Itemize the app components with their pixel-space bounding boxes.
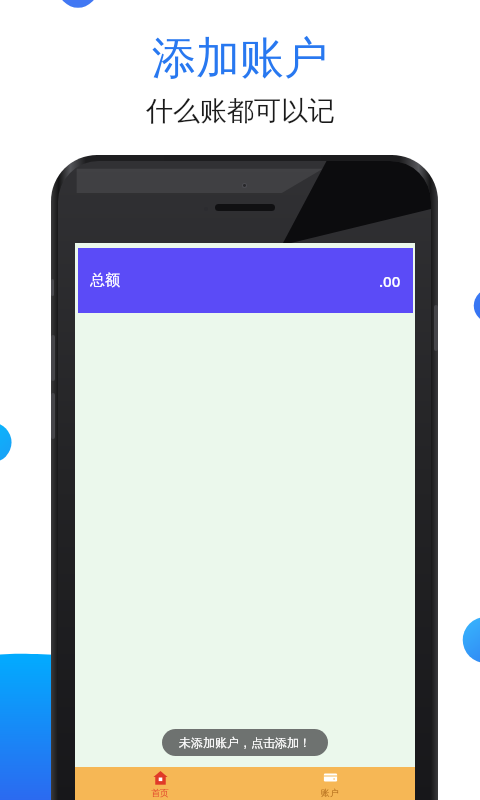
staticText: .00 — [379, 271, 401, 291]
staticText: 首页 — [151, 787, 169, 798]
staticText: 什么账都可以记 — [146, 94, 335, 128]
button[interactable]: 未添加账户，点击添加！ — [162, 729, 328, 756]
staticText: 总额 — [90, 271, 120, 290]
button[interactable]: 总额 — [78, 248, 413, 313]
button[interactable]: 首页 — [75, 767, 245, 800]
staticText: 添加账户 — [152, 31, 328, 86]
staticText: 未添加账户，点击添加！ — [179, 735, 311, 750]
staticText: 账户 — [321, 787, 339, 798]
button[interactable]: 账户 — [245, 767, 415, 800]
